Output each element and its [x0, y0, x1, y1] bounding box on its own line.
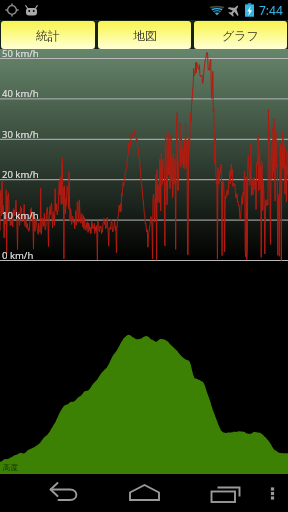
staticText: 高度 — [3, 463, 18, 472]
staticText: 0 km/h — [2, 249, 34, 262]
staticText: 20 km/h — [2, 168, 39, 181]
button[interactable]: Recent apps — [181, 474, 254, 512]
staticText: グラフ — [222, 28, 259, 43]
button[interactable]: グラフ — [194, 21, 287, 49]
button[interactable]: 地図 — [98, 21, 191, 49]
staticText: 地図 — [133, 28, 157, 43]
staticText: 50 km/h — [2, 47, 39, 60]
button[interactable]: 統計 — [1, 21, 95, 49]
button[interactable]: Back — [20, 474, 108, 512]
staticText: 統計 — [36, 28, 60, 43]
staticText: 7:44 — [259, 2, 283, 18]
staticText: 10 km/h — [2, 209, 39, 222]
staticText: 40 km/h — [2, 87, 39, 100]
button[interactable]: Home — [108, 474, 181, 512]
button[interactable]: More options — [254, 474, 288, 512]
staticText: 30 km/h — [2, 128, 39, 141]
